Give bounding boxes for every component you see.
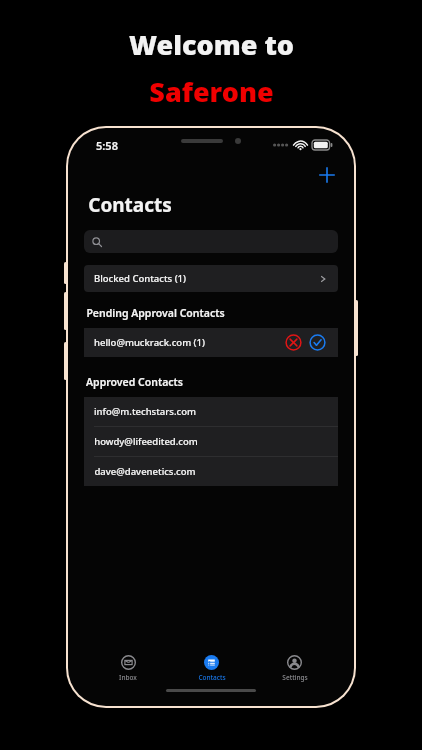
button[interactable]: Contacts (170, 653, 253, 684)
button[interactable]: howdy@lifeedited.com (84, 427, 338, 456)
staticText: howdy@lifeedited.com (94, 435, 198, 448)
staticText: Approved Contacts (86, 375, 183, 389)
button[interactable]: Add contact (314, 162, 340, 188)
staticText: Saferone (149, 73, 274, 110)
button[interactable]: info@m.techstars.com (84, 397, 338, 426)
button[interactable]: dave@davenetics.com (84, 457, 338, 486)
staticText: Pending Approval Contacts (86, 306, 225, 320)
staticText: dave@davenetics.com (94, 465, 196, 478)
button[interactable]: Inbox (86, 653, 170, 684)
staticText: Inbox (119, 673, 137, 682)
button[interactable] (84, 230, 338, 253)
button[interactable]: Blocked Contacts (1) (84, 265, 338, 292)
button[interactable]: Reject contact (285, 334, 302, 351)
staticText: hello@muckrack.com (1) (94, 336, 205, 349)
staticText: info@m.techstars.com (94, 405, 196, 418)
button[interactable]: Settings (253, 653, 336, 684)
button[interactable]: hello@muckrack.com (1) (84, 328, 338, 357)
button[interactable]: Approve contact (309, 334, 326, 351)
staticText: Contacts (88, 192, 172, 218)
staticText: Contacts (198, 673, 226, 682)
staticText: Blocked Contacts (1) (94, 272, 186, 285)
staticText: Welcome to (129, 26, 294, 63)
staticText: 5:58 (96, 138, 118, 153)
staticText: Settings (282, 673, 308, 682)
